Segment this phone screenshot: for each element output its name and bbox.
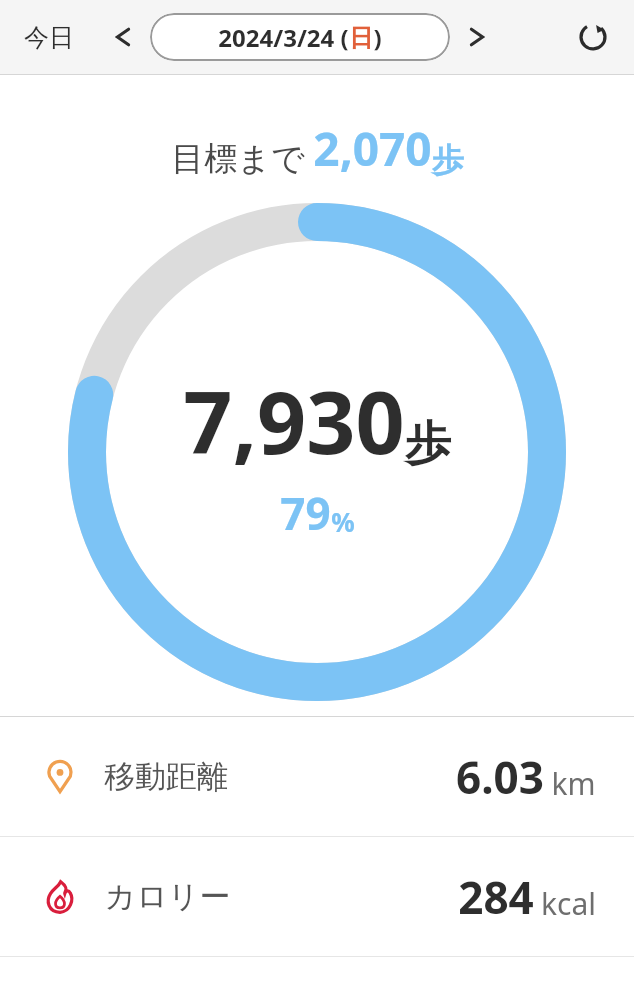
other: 移動距離 [40,757,80,797]
staticText: ) [373,21,382,54]
button[interactable]: 今日 [18,16,80,59]
staticText: 79 [280,483,331,543]
staticText: 今日 [24,22,74,53]
staticText: 2,070 [313,117,432,180]
button[interactable]: カロリー [0,837,634,956]
button[interactable]: 前の日 [102,16,144,58]
other: カロリー [40,877,80,917]
staticText: km [551,763,596,804]
staticText: kcal [541,883,596,924]
staticText: 歩 [432,140,464,180]
staticText: % [331,504,355,539]
staticText: 日 [349,23,373,53]
staticText: 284 [458,867,534,927]
staticText: 目標まで [171,138,305,180]
button[interactable]: 次の日 [456,16,498,58]
staticText: 2024/3/24 ( [218,21,349,54]
staticText: カロリー [104,877,231,916]
staticText: 6.03 [456,747,544,807]
button[interactable]: 更新 [570,14,616,60]
button[interactable]: 移動距離 [0,717,634,836]
staticText: 移動距離 [104,757,228,796]
staticText: 歩 [405,415,451,473]
button[interactable]: 2024/3/24 ( [150,13,450,61]
staticText: 7,930 [183,362,405,479]
